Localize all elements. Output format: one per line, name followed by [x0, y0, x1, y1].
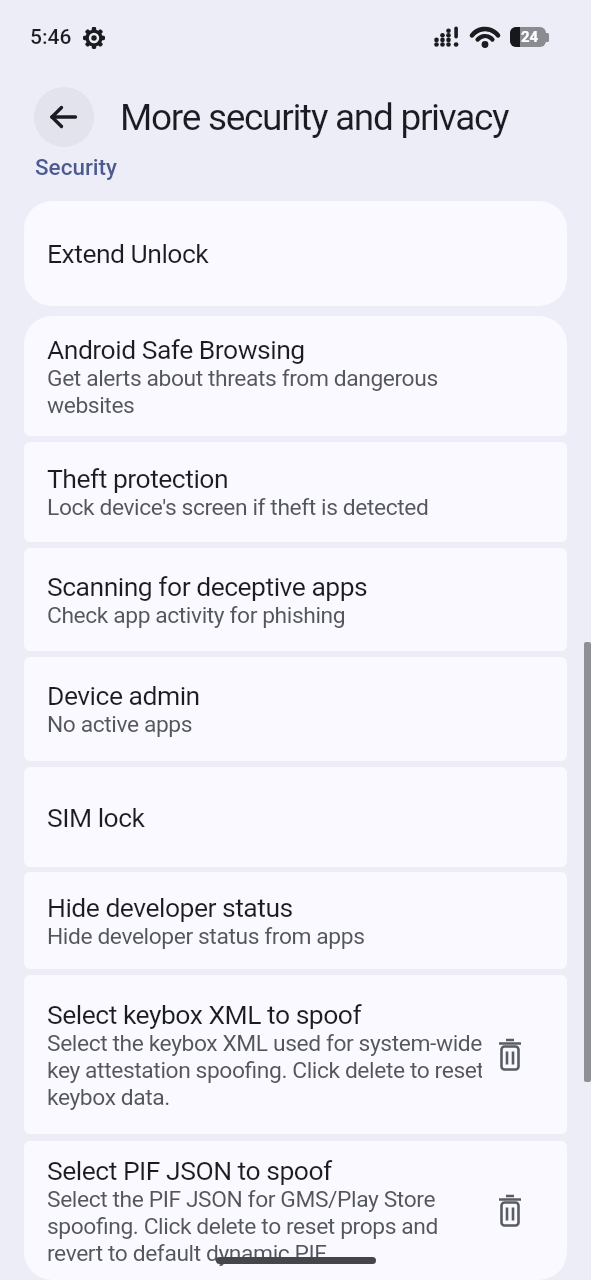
button[interactable]: Theft protection — [24, 442, 567, 542]
staticText: SIM lock — [47, 802, 145, 833]
button[interactable]: Scanning for deceptive apps — [24, 548, 567, 651]
button[interactable]: Select PIF JSON to spoof — [24, 1141, 567, 1280]
staticText: Android Safe Browsing — [47, 334, 305, 365]
staticText: Select keybox XML to spoof — [47, 999, 362, 1030]
staticText: Get alerts about threats from dangerous … — [47, 365, 438, 419]
button[interactable]: Extend Unlock — [24, 201, 567, 306]
staticText: 24 — [521, 28, 539, 46]
staticText: Select the PIF JSON for GMS/Play Store s… — [47, 1186, 438, 1267]
button[interactable]: Hide developer status — [24, 872, 567, 969]
button[interactable]: Device admin — [24, 657, 567, 761]
button[interactable] — [490, 1191, 530, 1231]
staticText: Hide developer status — [47, 892, 293, 923]
staticText: Hide developer status from apps — [47, 923, 365, 950]
staticText: Lock device's screen if theft is detecte… — [47, 494, 429, 521]
staticText: Select the keybox XML used for system-wi… — [47, 1030, 482, 1111]
button[interactable]: Android Safe Browsing — [24, 316, 567, 436]
button[interactable] — [490, 1035, 530, 1075]
button[interactable]: SIM lock — [24, 767, 567, 867]
staticText: More security and privacy — [120, 96, 509, 139]
button[interactable]: Select keybox XML to spoof — [24, 975, 567, 1134]
staticText: Security — [35, 154, 118, 180]
staticText: Device admin — [47, 680, 200, 711]
staticText: 5:46 — [30, 25, 72, 50]
staticText: No active apps — [47, 711, 193, 738]
staticText: Select PIF JSON to spoof — [47, 1155, 332, 1186]
staticText: Check app activity for phishing — [47, 602, 346, 629]
staticText: Scanning for deceptive apps — [47, 571, 368, 602]
staticText: Extend Unlock — [47, 238, 209, 269]
button[interactable] — [34, 87, 94, 147]
staticText: Theft protection — [47, 463, 229, 494]
